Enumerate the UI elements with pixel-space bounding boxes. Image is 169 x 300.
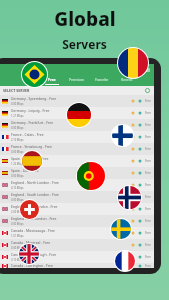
staticText: England - North London - Free <box>11 180 60 185</box>
staticText: Free <box>145 231 151 235</box>
staticText: 4.10 Mbps <box>11 186 24 190</box>
button[interactable]: Canada - Mississauga - Free <box>0 227 154 239</box>
staticText: 3.10 Mbps <box>11 258 24 262</box>
button[interactable]: France - Calais - Free <box>0 131 154 143</box>
button[interactable]: France - Strasbourg - Free <box>0 143 154 155</box>
staticText: Free <box>145 147 151 151</box>
button[interactable]: Canada - Carrington - Free <box>0 263 154 268</box>
staticText: 0.00 Mbps <box>11 102 24 106</box>
staticText: Servers <box>62 36 107 52</box>
button[interactable]: Free <box>39 75 64 86</box>
staticText: 1.22 Mbps <box>11 162 24 166</box>
button[interactable]: Canada - Montreal - Free <box>0 239 154 251</box>
button[interactable]: England - East London - Free <box>0 215 154 227</box>
staticText: Free <box>145 135 151 139</box>
staticText: Germany - Leipzig - Free <box>11 108 50 113</box>
staticText: Free <box>145 195 151 199</box>
staticText: Germany - Frankfurt - Free <box>11 120 54 125</box>
staticText: 1.21 Mbps <box>11 114 24 118</box>
staticText: Free <box>145 255 151 259</box>
staticText: Canada - Mississauga - Free <box>11 228 55 233</box>
staticText: Free <box>145 219 151 223</box>
staticText: 0.00 Mbps <box>11 150 24 154</box>
staticText: 0.00 Mbps <box>11 246 24 250</box>
button[interactable]: Recent <box>114 75 139 86</box>
staticText: Free <box>145 207 151 211</box>
button[interactable]: Favorite <box>89 75 114 86</box>
staticText: SELECT SERVER <box>3 88 30 93</box>
staticText: Free <box>145 159 151 163</box>
button[interactable]: England - South London - Free <box>0 191 154 203</box>
staticText: France - Strasbourg - Free <box>11 144 52 149</box>
staticText: Canada - Scarborough - Free <box>11 252 57 257</box>
button[interactable]: Spain - Barcelona - Free <box>0 155 154 167</box>
staticText: Free <box>145 264 151 268</box>
staticText: Spain - Lille - Free <box>11 168 39 173</box>
button[interactable]: Premium <box>64 75 89 86</box>
staticText: Favorite <box>95 77 109 82</box>
staticText: Free <box>145 243 151 247</box>
staticText: England - South London - Free <box>11 192 60 197</box>
button[interactable]: Refresh <box>145 88 150 93</box>
button[interactable]: England - North London - Free <box>0 179 154 191</box>
staticText: Canada - Montreal - Free <box>11 240 51 245</box>
staticText: Premium <box>69 77 85 82</box>
button[interactable]: England - West London - Free <box>0 203 154 215</box>
staticText: 0.00 Mbps <box>11 126 24 130</box>
staticText: Free <box>145 183 151 187</box>
staticText: 2.10 Mbps <box>11 138 24 142</box>
staticText: 2.00 Mbps <box>11 210 24 214</box>
staticText: Free <box>145 111 151 115</box>
button[interactable]: Germany - Frankfurt - Free <box>0 119 154 131</box>
button[interactable]: Canada - Scarborough - Free <box>0 251 154 263</box>
staticText: Canada - Carrington - Free <box>11 263 53 268</box>
staticText: Germany - Spremberg - Free <box>11 96 57 101</box>
staticText: Recent <box>121 77 133 82</box>
staticText: Global <box>54 6 116 32</box>
staticText: 0.00 Mbps <box>11 174 24 178</box>
staticText: England - East London - Free <box>11 216 57 221</box>
staticText: France - Calais - Free <box>11 132 44 137</box>
staticText: Free <box>145 171 151 175</box>
button[interactable]: Germany - Leipzig - Free <box>0 107 154 119</box>
staticText: England - West London - Free <box>11 204 58 209</box>
staticText: 0.00 Mbps <box>11 198 24 202</box>
staticText: Free <box>145 99 151 103</box>
staticText: Spain - Barcelona - Free <box>11 156 49 161</box>
staticText: Free <box>48 77 56 82</box>
button[interactable]: Germany - Spremberg - Free <box>0 95 154 107</box>
staticText: Free <box>145 123 151 127</box>
staticText: 1.01 Mbps <box>11 234 24 238</box>
staticText: 0.00 Mbps <box>11 222 24 226</box>
button[interactable]: Spain - Lille - Free <box>0 167 154 179</box>
